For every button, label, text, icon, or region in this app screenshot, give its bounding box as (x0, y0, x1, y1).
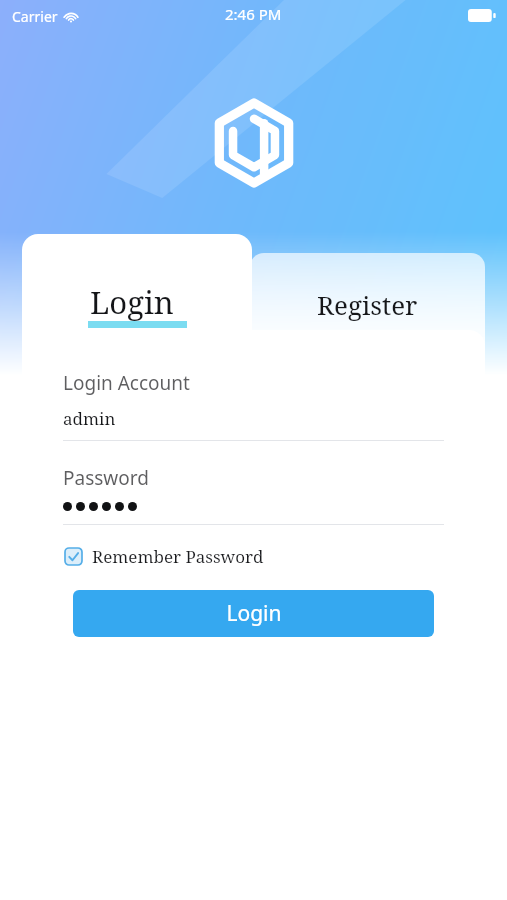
button[interactable]: Login (22, 234, 252, 346)
button[interactable]: Remember Password (65, 545, 264, 568)
staticText: Remember Password (92, 545, 264, 568)
staticText: 2:46 PM (225, 4, 282, 24)
staticText: Carrier (12, 7, 58, 26)
staticText: Login (226, 599, 282, 628)
staticText: Login (90, 281, 174, 323)
button[interactable]: Register (250, 253, 485, 345)
staticText: admin (63, 407, 116, 430)
button[interactable]: Login (73, 590, 434, 637)
staticText: Register (317, 287, 418, 322)
staticText: Login Account (63, 370, 190, 396)
staticText: Password (63, 465, 149, 491)
